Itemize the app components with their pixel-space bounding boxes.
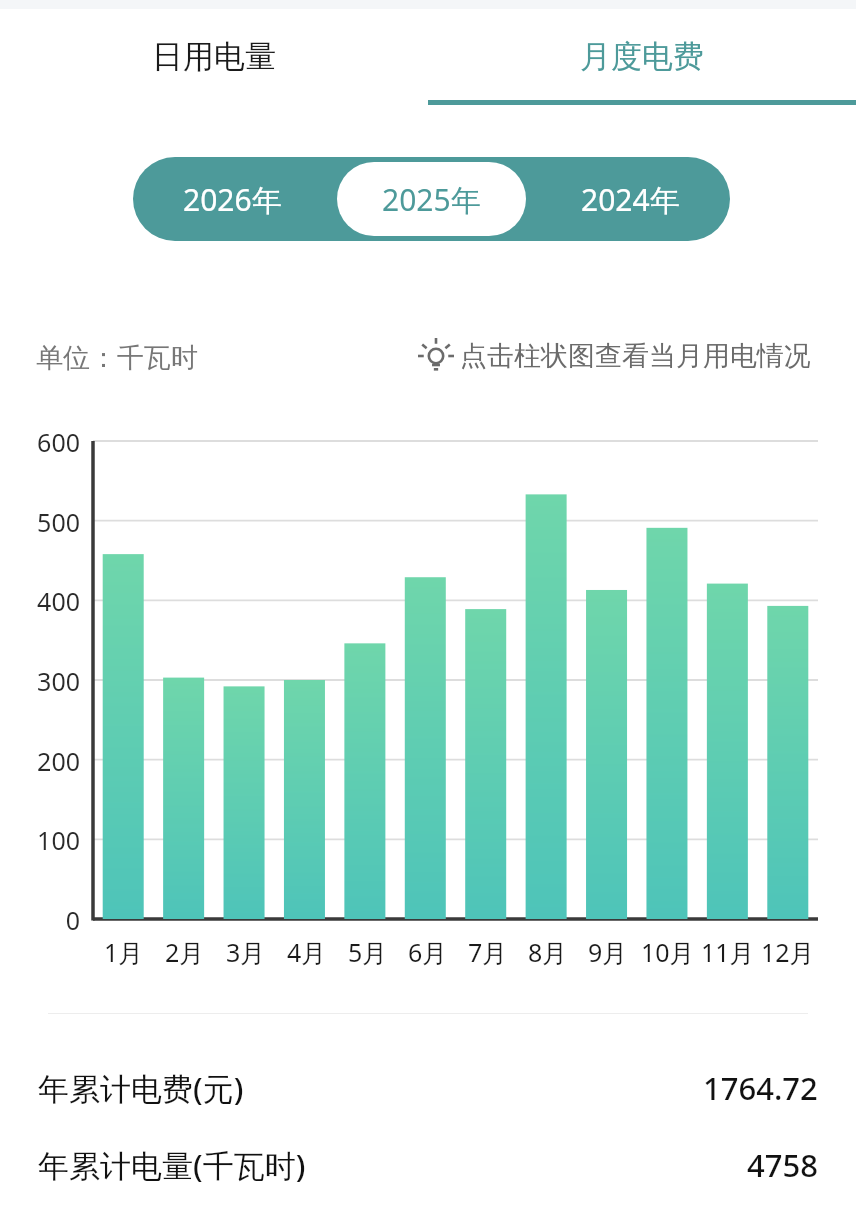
staticText: 2024年 [581, 179, 680, 220]
staticText: 日用电量 [152, 37, 276, 76]
staticText: 月度电费 [580, 37, 704, 76]
button[interactable]: 年累计电量(千瓦时) [38, 1140, 818, 1190]
button[interactable]: 月度电费 [428, 9, 856, 104]
staticText: 12月 [761, 935, 815, 969]
staticText: 2月 [165, 935, 205, 969]
staticText: 500 [20, 505, 80, 539]
staticText: 1764.72 [703, 1067, 818, 1109]
button[interactable]: 2025年 [337, 162, 526, 236]
staticText: 7月 [468, 935, 508, 969]
staticText: 6月 [408, 935, 448, 969]
staticText: 0 [20, 903, 80, 937]
staticText: 单位：千瓦时 [36, 341, 198, 375]
button[interactable]: 日用电量 [0, 9, 428, 104]
button[interactable]: 2026年 [138, 162, 327, 236]
staticText: 600 [20, 425, 80, 459]
staticText: 200 [20, 744, 80, 778]
staticText: 100 [20, 823, 80, 857]
staticText: 4758 [747, 1144, 818, 1186]
button[interactable]: 2024年 [536, 162, 725, 236]
button[interactable]: 0 [0, 420, 856, 940]
staticText: 400 [20, 584, 80, 618]
staticText: 10月 [641, 935, 695, 969]
staticText: 年累计电费(元) [38, 1067, 244, 1109]
staticText: 2025年 [382, 179, 481, 220]
staticText: 300 [20, 664, 80, 698]
staticText: 9月 [588, 935, 628, 969]
button[interactable]: 年累计电费(元) [38, 1063, 818, 1113]
other: 提示 [418, 338, 454, 374]
button[interactable]: 点击柱状图查看当月用电情况 [418, 338, 811, 374]
staticText: 8月 [528, 935, 568, 969]
staticText: 点击柱状图查看当月用电情况 [460, 339, 811, 373]
staticText: 3月 [226, 935, 266, 969]
staticText: 1月 [104, 935, 144, 969]
staticText: 11月 [701, 935, 755, 969]
staticText: 4月 [287, 935, 327, 969]
staticText: 2026年 [183, 179, 282, 220]
staticText: 年累计电量(千瓦时) [38, 1144, 306, 1186]
staticText: 5月 [348, 935, 388, 969]
